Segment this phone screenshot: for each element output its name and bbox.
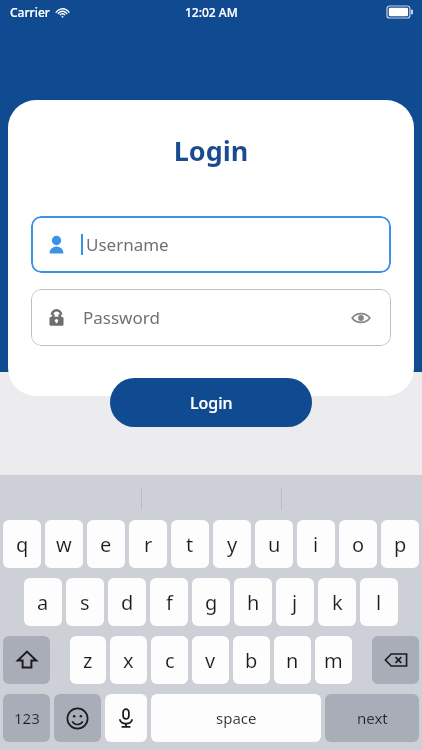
staticText: x [123, 647, 134, 674]
staticText: z [83, 647, 93, 674]
button[interactable]: Password [31, 289, 391, 346]
staticText: Username [86, 233, 169, 256]
button[interactable]: v [192, 636, 229, 684]
button[interactable]: d [108, 578, 146, 626]
staticText: g [205, 589, 218, 616]
button[interactable]: space [151, 694, 321, 742]
button[interactable]: next [325, 694, 419, 742]
staticText: 12:02 AM [185, 4, 238, 20]
staticText: y [227, 531, 238, 558]
button[interactable]: Username [31, 216, 391, 273]
button[interactable]: Shift [3, 636, 50, 684]
button[interactable]: a [24, 578, 62, 626]
button[interactable]: q [3, 520, 41, 568]
button[interactable]: k [318, 578, 356, 626]
staticText: q [16, 531, 29, 558]
staticText: 123 [14, 708, 40, 728]
button[interactable]: x [110, 636, 147, 684]
staticText: r [144, 531, 153, 558]
button[interactable]: Login [110, 378, 312, 427]
button[interactable]: i [297, 520, 335, 568]
staticText: Login [8, 132, 414, 169]
staticText: h [247, 589, 260, 616]
button[interactable]: Dictation [105, 694, 147, 742]
staticText: space [216, 708, 257, 728]
button[interactable]: s [66, 578, 104, 626]
staticText: w [56, 531, 72, 558]
button[interactable]: r [129, 520, 167, 568]
staticText: Carrier [10, 4, 50, 20]
button[interactable]: g [192, 578, 230, 626]
staticText: u [268, 531, 281, 558]
button[interactable]: o [339, 520, 377, 568]
staticText: p [394, 531, 407, 558]
button[interactable]: c [151, 636, 188, 684]
staticText: i [313, 531, 319, 558]
staticText: Password [83, 306, 160, 329]
button[interactable]: y [213, 520, 251, 568]
staticText: next [357, 708, 388, 728]
staticText: j [292, 589, 298, 616]
staticText: b [245, 647, 258, 674]
button[interactable]: e [87, 520, 125, 568]
staticText: f [166, 589, 173, 616]
button[interactable]: Backspace [372, 636, 419, 684]
button[interactable]: w [45, 520, 83, 568]
button[interactable]: b [233, 636, 270, 684]
staticText: n [286, 647, 299, 674]
button[interactable]: f [150, 578, 188, 626]
staticText: v [205, 647, 216, 674]
button[interactable]: h [234, 578, 272, 626]
staticText: k [332, 589, 343, 616]
button[interactable]: 123 [3, 694, 50, 742]
staticText: a [37, 589, 49, 616]
staticText: l [376, 589, 382, 616]
button[interactable]: m [315, 636, 352, 684]
staticText: t [186, 531, 194, 558]
staticText: m [324, 647, 343, 674]
staticText: d [121, 589, 134, 616]
button[interactable]: z [70, 636, 106, 684]
staticText: o [352, 531, 365, 558]
button[interactable]: l [360, 578, 398, 626]
button[interactable]: Emoji [54, 694, 101, 742]
staticText: e [100, 531, 112, 558]
button[interactable]: j [276, 578, 314, 626]
staticText: s [80, 589, 90, 616]
button[interactable]: p [381, 520, 419, 568]
button[interactable]: n [274, 636, 311, 684]
button[interactable]: Show password [347, 304, 375, 332]
staticText: c [165, 647, 175, 674]
button[interactable]: t [171, 520, 209, 568]
staticText: Login [190, 392, 233, 414]
button[interactable]: u [255, 520, 293, 568]
